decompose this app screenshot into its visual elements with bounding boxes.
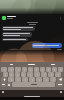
button[interactable]: Key	[15, 72, 20, 77]
button[interactable]: Numbers	[1, 82, 6, 87]
button[interactable]: Key	[9, 72, 14, 77]
button[interactable]: Key	[8, 67, 14, 72]
button[interactable]: Microphone	[60, 91, 62, 93]
button[interactable]: Key	[40, 67, 45, 72]
button[interactable]	[32, 43, 62, 48]
button[interactable]	[12, 82, 55, 87]
button[interactable]	[2, 32, 32, 37]
button[interactable]	[42, 62, 63, 67]
button[interactable]: Key	[29, 77, 35, 82]
button[interactable]: More options	[0, 14, 64, 21]
button[interactable]	[2, 26, 35, 31]
button[interactable]: Emoji	[7, 82, 11, 87]
button[interactable]: Key	[43, 77, 49, 82]
button[interactable]: Key	[52, 67, 57, 72]
button[interactable]: Key	[1, 67, 7, 72]
button[interactable]: Key	[22, 77, 28, 82]
button[interactable]	[21, 62, 42, 67]
button[interactable]: Key	[27, 72, 33, 77]
button[interactable]: Key	[48, 72, 54, 77]
button[interactable]: Key	[58, 67, 63, 72]
button[interactable]: Key	[22, 67, 27, 72]
button[interactable]: Key	[15, 67, 21, 72]
button[interactable]: Key	[34, 72, 40, 77]
button[interactable]: Shift	[1, 77, 7, 82]
button[interactable]: Key	[34, 67, 39, 72]
button[interactable]: More options	[58, 16, 62, 20]
button[interactable]	[1, 62, 21, 67]
button[interactable]: Keyboard switch	[2, 91, 4, 93]
button[interactable]: Key	[8, 77, 14, 82]
button[interactable]: Key	[3, 72, 8, 77]
button[interactable]: Key	[41, 72, 47, 77]
button[interactable]: Key	[55, 72, 61, 77]
button[interactable]: Key	[21, 72, 26, 77]
button[interactable]	[2, 38, 28, 41]
button[interactable]: Backspace	[57, 77, 63, 82]
button[interactable]: Key	[46, 67, 51, 72]
button[interactable]: Key	[36, 77, 42, 82]
button[interactable]: Return	[56, 82, 63, 87]
button[interactable]: Key	[50, 77, 56, 82]
button[interactable]: Key	[15, 77, 21, 82]
button[interactable]: Key	[28, 67, 33, 72]
